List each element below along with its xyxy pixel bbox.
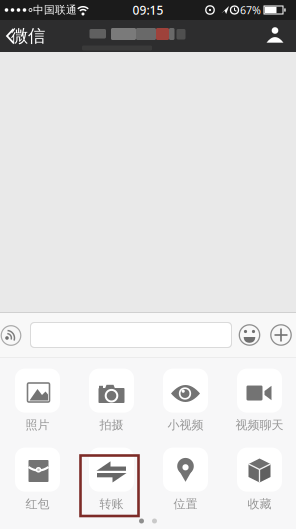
button[interactable]: 拍摄 — [89, 369, 134, 432]
staticText: 位置 — [173, 497, 197, 511]
staticText: 转账 — [99, 497, 123, 511]
staticText: 09:15 — [132, 2, 163, 18]
button[interactable]: 照片 — [15, 369, 60, 432]
button[interactable]: 转账 — [89, 448, 134, 511]
staticText: 收藏 — [247, 497, 271, 511]
staticText: 微信 — [11, 25, 45, 47]
button[interactable]: 联系人信息 — [260, 20, 290, 50]
button[interactable]: 小视频 — [163, 369, 208, 432]
button[interactable]: 视频聊天 — [235, 369, 283, 432]
staticText: 照片 — [25, 418, 49, 432]
button[interactable]: 更多功能 — [270, 324, 292, 346]
button[interactable]: 按住说话 — [0, 324, 22, 346]
staticText: 中国联通 — [33, 3, 77, 16]
staticText: 拍摄 — [99, 418, 123, 432]
staticText: 视频聊天 — [235, 418, 283, 432]
staticText: 小视频 — [167, 418, 203, 432]
staticText: 67% — [240, 3, 261, 17]
button[interactable]: 输入消息 — [30, 322, 232, 348]
button[interactable]: 收藏 — [237, 448, 282, 511]
staticText: 红包 — [25, 497, 49, 511]
button[interactable]: 表情 — [238, 324, 260, 346]
button[interactable]: 位置 — [163, 448, 208, 511]
button[interactable]: 红包 — [15, 448, 60, 511]
button[interactable]: 微信 — [2, 20, 50, 52]
